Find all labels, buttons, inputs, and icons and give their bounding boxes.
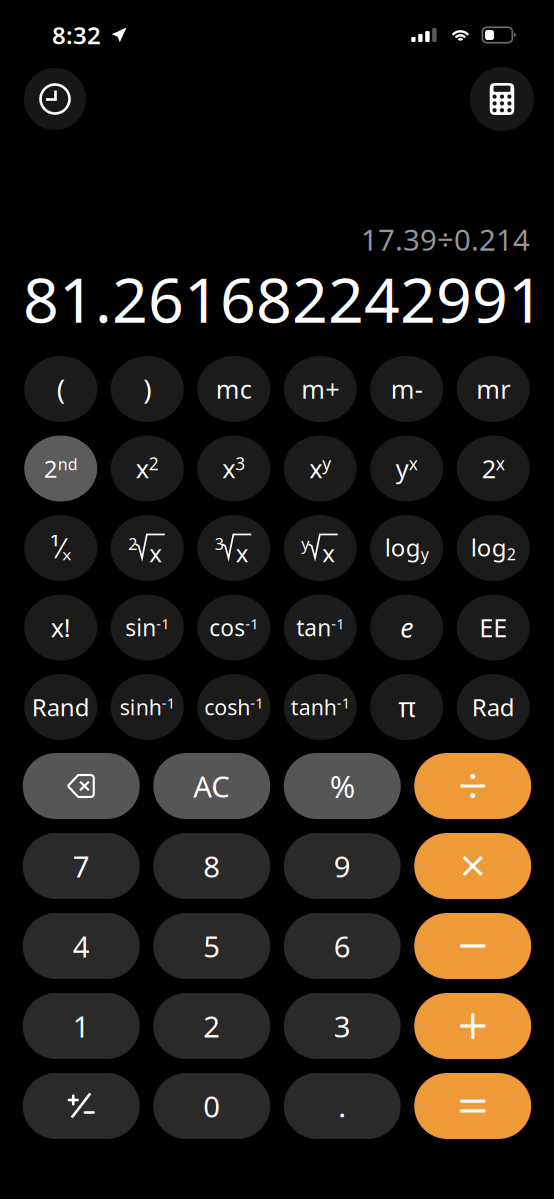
button[interactable]: x! (24, 594, 97, 660)
staticText: x (149, 537, 162, 569)
button[interactable]: m+ (284, 356, 357, 422)
staticText: tan-1 (296, 612, 344, 642)
button[interactable]: x3 (197, 435, 270, 501)
button[interactable] (414, 993, 531, 1059)
button[interactable]: 9 (284, 833, 401, 899)
staticText: sin-1 (125, 612, 169, 642)
staticText: y (301, 533, 309, 554)
staticText: EE (479, 611, 507, 644)
button[interactable]: logy (370, 515, 443, 581)
staticText: cosh-1 (204, 693, 263, 721)
staticText: x (322, 537, 335, 569)
button[interactable]: . (284, 1073, 401, 1139)
staticText: x (236, 537, 249, 569)
staticText: m- (391, 372, 423, 406)
staticText: AC (193, 766, 230, 805)
staticText: yx (396, 452, 418, 485)
staticText: x2 (136, 452, 159, 485)
staticText: x! (51, 611, 71, 644)
button[interactable]: EE (457, 594, 530, 660)
staticText: ( (57, 370, 65, 408)
button[interactable]: 8 (153, 833, 270, 899)
staticText: logy (385, 531, 429, 565)
button[interactable] (414, 913, 531, 979)
button[interactable]: Rad (457, 674, 530, 740)
button[interactable]: History (24, 68, 86, 130)
button[interactable]: m- (370, 356, 443, 422)
button[interactable]: 5 (153, 913, 270, 979)
staticText: 3 (215, 533, 224, 554)
button[interactable]: π (370, 674, 443, 740)
button[interactable]: 3 (284, 993, 401, 1059)
button[interactable] (414, 753, 531, 819)
button[interactable]: cos-1 (197, 594, 270, 660)
staticText: mc (216, 372, 252, 406)
button[interactable]: e (370, 594, 443, 660)
staticText: 8 (203, 846, 220, 885)
staticText: m+ (301, 372, 339, 406)
staticText: 0 (203, 1086, 220, 1125)
staticText: sinh-1 (120, 693, 175, 721)
staticText: 9 (334, 846, 351, 885)
staticText: tanh-1 (291, 693, 350, 721)
staticText: 2x (482, 452, 505, 485)
staticText: cos-1 (209, 612, 258, 642)
button[interactable] (23, 753, 140, 819)
button[interactable]: AC (153, 753, 270, 819)
button[interactable]: 2 (153, 993, 270, 1059)
staticText: 2nd (44, 453, 78, 484)
button[interactable]: ( (24, 356, 97, 422)
button[interactable]: Calculator keypad (470, 67, 534, 131)
staticText: ) (143, 370, 151, 408)
button[interactable] (23, 1073, 140, 1139)
staticText: ¹⁄ₓ (50, 530, 71, 566)
button[interactable]: 1 (23, 993, 140, 1059)
button[interactable]: 6 (284, 913, 401, 979)
staticText: % (330, 766, 355, 806)
staticText: 3 (334, 1006, 351, 1045)
button[interactable]: ¹⁄ₓ (24, 515, 97, 581)
staticText: e (400, 610, 413, 645)
button[interactable]: 7 (23, 833, 140, 899)
button[interactable]: 4 (23, 913, 140, 979)
button[interactable] (414, 833, 531, 899)
staticText: 2 (203, 1006, 220, 1045)
button[interactable]: sin-1 (111, 594, 184, 660)
staticText: x3 (222, 452, 245, 485)
staticText: xy (309, 452, 331, 485)
button[interactable]: 0 (153, 1073, 270, 1139)
staticText: 2 (128, 533, 137, 554)
button[interactable]: mc (197, 356, 270, 422)
button[interactable]: x2 (111, 435, 184, 501)
staticText: log2 (471, 531, 516, 565)
button[interactable]: 2x (457, 435, 530, 501)
staticText: 6 (334, 926, 351, 965)
button[interactable]: Rand (24, 674, 97, 740)
staticText: 7 (73, 846, 90, 885)
button[interactable]: 2nd (24, 435, 97, 501)
button[interactable] (414, 1073, 531, 1139)
button[interactable]: ) (111, 356, 184, 422)
button[interactable]: xy (284, 435, 357, 501)
button[interactable]: tanh-1 (284, 674, 357, 740)
button[interactable]: y (284, 515, 357, 581)
staticText: Rand (32, 691, 90, 723)
staticText: 5 (203, 926, 220, 965)
button[interactable]: tan-1 (284, 594, 357, 660)
button[interactable]: % (284, 753, 401, 819)
staticText: 4 (73, 926, 90, 965)
button[interactable]: log2 (457, 515, 530, 581)
staticText: Rad (472, 691, 515, 723)
button[interactable]: sinh-1 (111, 674, 184, 740)
staticText: . (338, 1086, 346, 1125)
button[interactable]: mr (457, 356, 530, 422)
button[interactable]: yx (370, 435, 443, 501)
button[interactable]: cosh-1 (197, 674, 270, 740)
staticText: mr (476, 372, 510, 406)
staticText: 1 (73, 1006, 90, 1045)
staticText: 81.261682242991 (23, 257, 544, 340)
button[interactable]: 3 (197, 515, 270, 581)
staticText: 8:32 (52, 19, 101, 51)
staticText: 17.39÷0.214 (361, 220, 530, 259)
button[interactable]: 2 (111, 515, 184, 581)
